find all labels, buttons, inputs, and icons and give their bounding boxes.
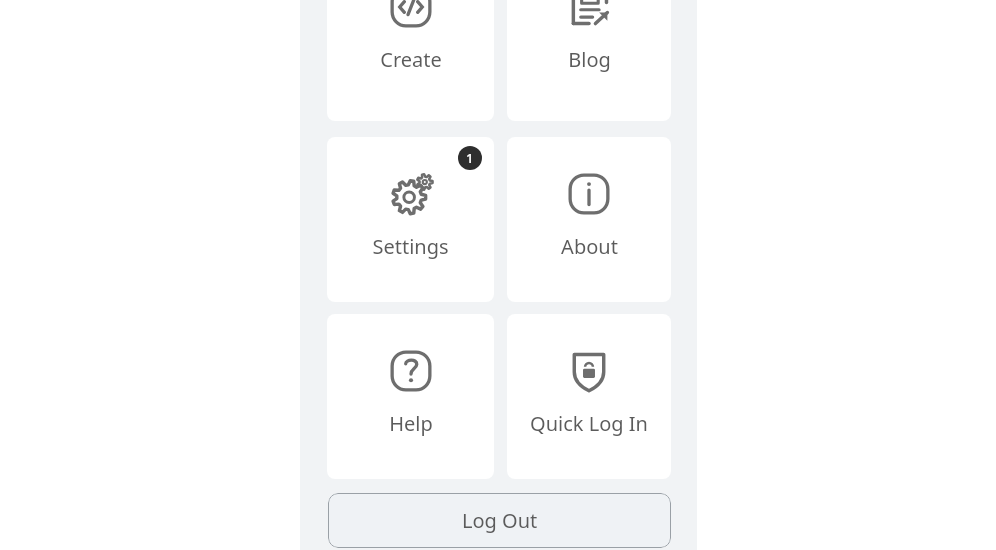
staticText: Blog xyxy=(568,46,611,73)
button[interactable]: Quick Log In xyxy=(507,314,671,479)
staticText: Create xyxy=(380,46,442,73)
button[interactable]: Help xyxy=(327,314,494,479)
other: Blog xyxy=(566,0,612,30)
button[interactable]: Create xyxy=(327,0,494,121)
other: Settings xyxy=(388,171,434,217)
staticText: Quick Log In xyxy=(530,410,648,437)
staticText: 1 xyxy=(466,149,474,167)
other: Help xyxy=(388,348,434,394)
staticText: About xyxy=(561,233,618,260)
button[interactable]: About xyxy=(507,137,671,302)
other: Quick Log In xyxy=(566,348,612,394)
staticText: Log Out xyxy=(462,507,538,534)
other: About xyxy=(566,171,612,217)
other: Create xyxy=(388,0,434,30)
button[interactable]: Log Out xyxy=(328,493,671,548)
button[interactable]: Blog xyxy=(507,0,671,121)
staticText: Settings xyxy=(372,233,449,260)
staticText: Help xyxy=(389,410,433,437)
button[interactable]: Settings xyxy=(327,137,494,302)
